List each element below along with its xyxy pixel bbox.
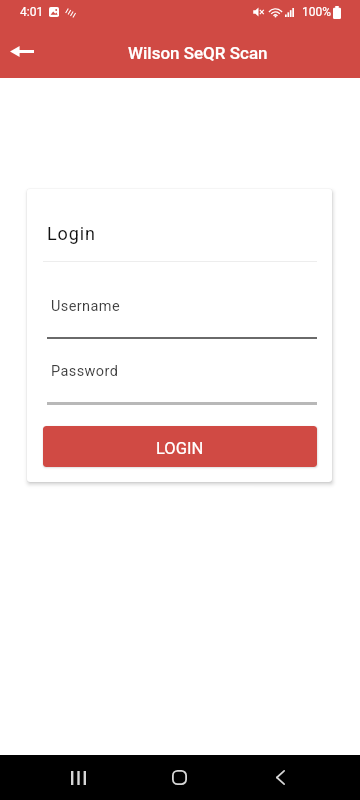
button[interactable]: Navigate back bbox=[4, 33, 40, 69]
button[interactable]: Password bbox=[47, 350, 317, 400]
staticText: 100% bbox=[302, 5, 332, 19]
button[interactable]: Recent apps bbox=[56, 755, 100, 800]
staticText: Login bbox=[47, 223, 96, 244]
button[interactable]: Username bbox=[47, 285, 317, 335]
staticText: Wilson SeQR Scan bbox=[128, 43, 268, 63]
staticText: Password bbox=[51, 363, 119, 380]
button[interactable]: Back bbox=[258, 755, 302, 800]
staticText: LOGIN bbox=[156, 439, 204, 458]
staticText: 4:01 bbox=[20, 5, 44, 19]
button[interactable]: Home bbox=[157, 755, 201, 800]
button[interactable]: LOGIN bbox=[43, 426, 317, 467]
staticText: Username bbox=[51, 298, 120, 315]
